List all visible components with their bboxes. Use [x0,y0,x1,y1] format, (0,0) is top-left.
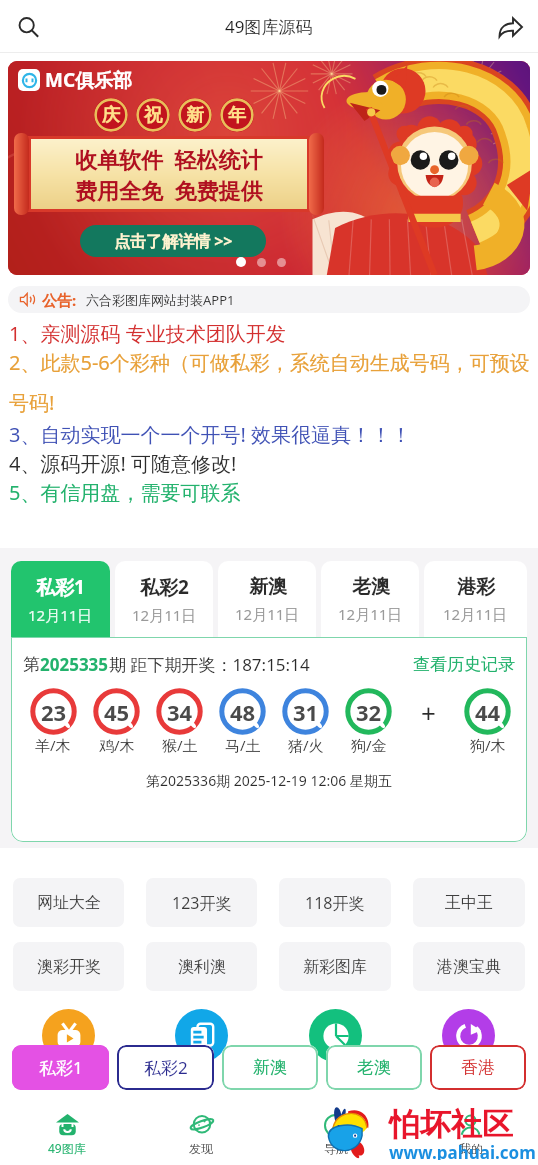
button[interactable]: Search [6,5,50,49]
button[interactable]: Chart [309,1009,362,1062]
staticText: 2、此款5-6个彩种（可做私彩，系统自动生成号码，可预设号码! [9,349,534,416]
button[interactable]: Share [488,5,532,49]
staticText: 44 [475,697,501,727]
button[interactable]: TV [42,1009,95,1062]
button[interactable]: 新澳 [222,1045,318,1090]
button[interactable]: 123开奖 [146,878,257,927]
button[interactable]: 老澳 [321,561,419,637]
staticText: 港澳宝典 [437,957,501,977]
button[interactable]: 私彩1 [12,1045,109,1090]
staticText: 新澳 [253,1057,287,1078]
staticText: 新 [186,104,204,127]
staticText: www.pahuai.com [389,1141,536,1160]
staticText: 港彩 [457,575,495,599]
button[interactable]: 新彩图库 [279,942,391,991]
staticText: 2025335 [40,653,109,676]
staticText: 3、自动实现一个一个开号! 效果很逼真！！！ [9,421,412,448]
button[interactable]: 新澳 [218,561,316,637]
button[interactable]: 导航 [268,1103,403,1165]
staticText: 45 [104,697,130,727]
staticText: 公告: [42,290,77,310]
staticText: 私彩1 [39,1056,83,1079]
button[interactable]: MC俱乐部 [8,61,530,275]
staticText: 23 [41,697,67,727]
staticText: 32 [356,697,382,727]
staticText: 4、源码开源! 可随意修改! [9,450,237,477]
staticText: 12月11日 [443,604,508,624]
staticText: 网址大全 [37,893,101,913]
staticText: 12月11日 [28,605,93,625]
staticText: + [421,695,436,730]
staticText: 狗/金 [351,735,387,755]
staticText: 费用全免 免费提供 [75,175,263,205]
staticText: 我的 [459,1141,483,1156]
button[interactable]: 私彩2 [117,1045,214,1090]
staticText: 香港 [461,1057,495,1078]
staticText: 马/土 [225,735,261,755]
button[interactable]: 私彩1 [11,561,110,637]
staticText: 12月11日 [235,604,300,624]
staticText: 导航 [324,1141,348,1156]
button[interactable]: 私彩2 [115,561,213,637]
staticText: 48 [230,697,256,727]
staticText: 118开奖 [305,892,365,914]
button[interactable]: Docs [175,1009,228,1062]
button[interactable]: Refresh [442,1009,495,1062]
staticText: 34 [167,697,193,727]
staticText: 私彩2 [140,574,189,600]
button[interactable]: 49图库 [0,1103,134,1165]
staticText: 狗/木 [470,735,506,755]
button[interactable]: 港澳宝典 [413,942,525,991]
staticText: MC俱乐部 [45,67,133,93]
staticText: 第2025336期 2025-12-19 12:06 星期五 [11,771,527,790]
staticText: 年 [228,104,246,127]
button[interactable]: 118开奖 [279,878,391,927]
staticText: 老澳 [352,575,390,599]
button[interactable]: 我的 [403,1103,538,1165]
staticText: 5、有信用盘，需要可联系 [9,479,241,506]
button[interactable]: 查看历史记录 [413,654,515,675]
staticText: 鸡/木 [99,735,135,755]
staticText: 祝 [144,104,162,127]
button[interactable]: 老澳 [326,1045,422,1090]
staticText: 私彩1 [36,574,85,600]
staticText: 新澳 [249,575,287,599]
button[interactable]: 澳利澳 [146,942,257,991]
button[interactable]: 港彩 [424,561,527,637]
staticText: 1、亲测源码 专业技术团队开发 [9,320,286,347]
button[interactable]: 网址大全 [13,878,124,927]
staticText: 49图库 [48,1140,86,1156]
staticText: 12月11日 [338,604,403,624]
staticText: 怕坏社区 [389,1105,513,1144]
staticText: 羊/木 [35,735,71,755]
staticText: 猴/土 [162,735,198,755]
staticText: 发现 [189,1141,213,1156]
staticText: 49图库源码 [225,15,313,38]
staticText: 私彩2 [144,1056,188,1079]
staticText: 31 [293,697,319,727]
staticText: 新彩图库 [303,957,367,977]
staticText: 庆 [102,104,120,127]
button[interactable]: 香港 [430,1045,526,1090]
staticText: 老澳 [357,1057,391,1078]
staticText: 六合彩图库网站封装APP1 [86,291,235,309]
staticText: 澳彩开奖 [37,957,101,977]
staticText: 123开奖 [172,892,232,914]
staticText: 猪/火 [288,735,324,755]
staticText: 期 距下期开奖：187:15:14 [109,653,310,676]
button[interactable]: 王中王 [413,878,525,927]
button[interactable]: 发现 [134,1103,268,1165]
staticText: 12月11日 [132,605,197,625]
staticText: 第 [23,654,40,675]
button[interactable]: 澳彩开奖 [13,942,124,991]
staticText: 王中王 [445,893,493,913]
staticText: 收单软件 轻松统计 [75,144,263,174]
staticText: 点击了解详情 >> [114,230,233,252]
staticText: 澳利澳 [178,957,226,977]
button[interactable]: 公告: [8,286,530,313]
button[interactable]: 点击了解详情 >> [80,225,266,257]
